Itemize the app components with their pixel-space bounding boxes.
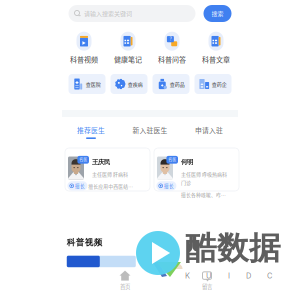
staticText: 何明: [181, 158, 193, 166]
staticText: 酷数据: [185, 228, 281, 268]
staticText: 科普问答: [158, 54, 186, 64]
staticText: 科普文章: [202, 54, 230, 64]
button[interactable]: 新入驻医生: [120, 124, 180, 140]
button[interactable]: 首页: [108, 271, 142, 290]
button[interactable]: 科普视频: [62, 33, 106, 63]
button[interactable]: 搜索: [203, 5, 231, 22]
staticText: 主任医师 肝病科: [92, 171, 128, 178]
staticText: 查药企: [212, 80, 227, 88]
staticText: 推荐医生: [77, 125, 105, 135]
staticText: 查疾病: [128, 80, 143, 88]
button[interactable]: 查疾病: [110, 74, 147, 94]
staticText: 擅长: [75, 182, 85, 189]
button[interactable]: 申请入驻: [180, 124, 238, 140]
staticText: 首页: [120, 283, 130, 290]
staticText: 请输入搜索关键词: [84, 9, 132, 18]
staticText: 申请入驻: [195, 125, 223, 135]
staticText: 名医: [79, 157, 87, 163]
button[interactable]: 留言: [190, 271, 224, 290]
staticText: 擅长: [164, 182, 174, 189]
staticText: 擅长应用中西医结…: [88, 183, 133, 190]
staticText: 主任医师 呼吸热病科: [181, 171, 227, 178]
staticText: 科普视频: [67, 237, 103, 248]
staticText: 擅长各种咳嗽、咋…: [181, 191, 226, 198]
button[interactable]: 科普文章: [194, 33, 238, 63]
button[interactable]: 健康笔记: [106, 33, 150, 63]
staticText: 查药品: [170, 80, 185, 88]
staticText: 门诊: [181, 179, 191, 186]
staticText: 健康笔记: [114, 54, 142, 64]
button[interactable]: 查药品: [152, 74, 189, 94]
staticText: K U I D C: [185, 271, 272, 280]
button[interactable]: ?: [150, 33, 194, 63]
button[interactable]: 名医: [65, 148, 150, 191]
staticText: 留言: [202, 283, 212, 290]
staticText: 新入驻医生: [132, 125, 167, 135]
button[interactable]: 查医院: [68, 74, 105, 94]
staticText: 王庆民: [92, 158, 110, 166]
button[interactable]: 推荐医生: [62, 124, 120, 140]
staticText: 科普视频: [70, 54, 98, 64]
staticText: 搜索: [211, 9, 223, 18]
staticText: 名医: [168, 157, 176, 163]
staticText: 查医院: [86, 80, 101, 88]
button[interactable]: 名医: [154, 148, 239, 191]
button[interactable]: 查药企: [194, 74, 231, 94]
staticText: ?: [169, 36, 171, 42]
